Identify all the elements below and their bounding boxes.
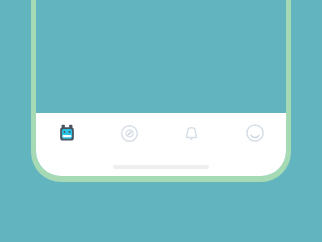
button[interactable]: Profile [223, 113, 286, 153]
button[interactable]: Explore [98, 113, 160, 153]
button[interactable]: Notifications [160, 113, 223, 153]
button[interactable]: Home [36, 113, 98, 153]
